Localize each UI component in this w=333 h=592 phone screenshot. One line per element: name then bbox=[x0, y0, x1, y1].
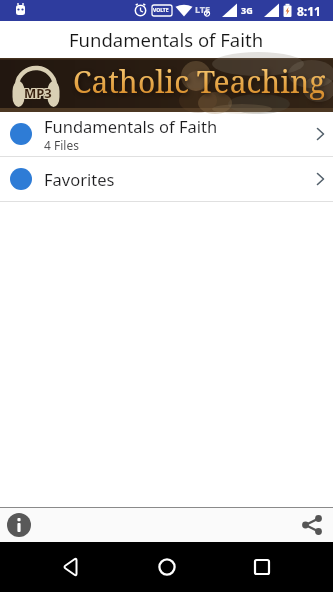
staticText: MP3 bbox=[25, 85, 53, 103]
button[interactable]: MP3 bbox=[0, 58, 333, 112]
button[interactable] bbox=[143, 543, 191, 591]
staticText: 3G bbox=[241, 4, 253, 16]
staticText: LTE bbox=[195, 3, 211, 15]
staticText: Catholic Teaching bbox=[73, 61, 326, 102]
staticText: MP3 bbox=[24, 84, 52, 102]
staticText: Favorites bbox=[44, 168, 115, 190]
button[interactable] bbox=[47, 543, 95, 591]
staticText: MP3 bbox=[25, 83, 53, 101]
staticText: MP3 bbox=[23, 85, 51, 103]
staticText: MP3 bbox=[23, 83, 51, 101]
staticText: Fundamentals of Faith bbox=[69, 27, 264, 52]
staticText: 8:11 bbox=[297, 3, 321, 19]
button[interactable]: Fundamentals of Faith bbox=[0, 112, 333, 156]
staticText: 4 Files bbox=[44, 137, 79, 153]
button[interactable]: Favorites bbox=[0, 157, 333, 201]
button[interactable]: MP3 bbox=[8, 62, 64, 108]
button[interactable] bbox=[7, 513, 31, 537]
button[interactable] bbox=[300, 513, 324, 537]
staticText: MP3 bbox=[24, 83, 52, 101]
staticText: VOLTE bbox=[153, 7, 169, 14]
staticText: MP3 bbox=[24, 85, 52, 103]
button[interactable] bbox=[238, 543, 286, 591]
staticText: MP3 bbox=[23, 84, 51, 102]
staticText: Fundamentals of Faith bbox=[44, 115, 218, 137]
staticText: MP3 bbox=[25, 84, 53, 102]
